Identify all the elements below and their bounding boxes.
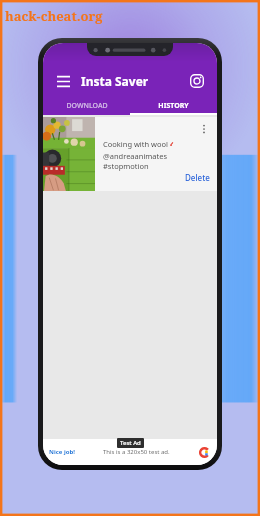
button[interactable]: Advertisement: This is a 320x50 test ad (43, 439, 217, 465)
staticText: Cooking with wool (103, 139, 168, 149)
staticText: hack-cheat.org (5, 7, 103, 25)
staticText: Insta Saver (81, 73, 149, 89)
button[interactable]: DOWNLOAD (43, 97, 130, 115)
button[interactable]: Cooking with wool (43, 117, 217, 191)
staticText: Delete (185, 172, 210, 183)
staticText: Nice job! (49, 448, 75, 456)
button[interactable]: HISTORY (130, 97, 217, 115)
staticText: Test Ad (120, 439, 141, 447)
button[interactable]: Open Instagram (187, 71, 207, 91)
staticText: This is a 320x50 test ad. (103, 448, 170, 456)
button[interactable]: More options (198, 123, 210, 135)
staticText: @andreaanimates #stopmotion (103, 151, 173, 171)
button[interactable]: Delete (185, 172, 210, 183)
button[interactable]: Open navigation menu (53, 71, 73, 91)
staticText: HISTORY (158, 101, 189, 111)
staticText: DOWNLOAD (66, 101, 108, 111)
